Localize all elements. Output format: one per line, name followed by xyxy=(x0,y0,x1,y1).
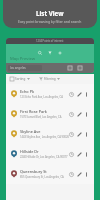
button[interactable]: Filter map xyxy=(48,51,52,55)
staticText: First Rose Park xyxy=(20,109,47,114)
button[interactable]: Edit xyxy=(77,172,82,177)
button[interactable]: Details xyxy=(69,132,74,137)
button[interactable]: Delete xyxy=(85,112,88,117)
button[interactable]: Details xyxy=(69,92,74,97)
button[interactable]: Map control xyxy=(77,65,83,71)
button[interactable]: Details xyxy=(69,172,74,177)
staticText: List View xyxy=(36,9,64,17)
staticText: Skyline Ave xyxy=(20,129,41,134)
button[interactable]: Skyline Ave xyxy=(6,124,94,144)
button[interactable]: Delete xyxy=(85,172,88,177)
staticText: Easy point browsing by filter and search xyxy=(18,19,82,24)
staticText: Echo Pk xyxy=(20,89,35,94)
staticText: Sorting xyxy=(15,77,26,81)
button[interactable]: Edit xyxy=(77,132,82,137)
button[interactable]: Edit xyxy=(77,152,82,157)
staticText: los angeles xyxy=(10,66,26,70)
button[interactable]: Details xyxy=(69,152,74,157)
button[interactable]: Map control xyxy=(67,65,73,71)
button[interactable]: Echo Pk xyxy=(6,84,94,104)
button[interactable]: Details xyxy=(69,112,74,117)
button[interactable]: Delete xyxy=(85,152,88,157)
staticText: Hillside Dr xyxy=(20,149,39,154)
staticText: 123 Echo Park Ave, Los Angeles, CA 90026 xyxy=(20,95,69,99)
staticText: 855 Queensbury St, Los Angeles, CA 90004 xyxy=(20,175,69,179)
button[interactable]: Queensbury St xyxy=(6,164,94,184)
button[interactable]: Filtering xyxy=(39,77,60,81)
staticText: 1570 Sunset Blvd, Los Angeles, CA 90026 xyxy=(20,115,69,119)
staticText: 1234 Points of interest xyxy=(36,39,64,43)
staticText: Queensbury St xyxy=(20,169,47,174)
staticText: 1443 Skyline Ave, Los Angeles, CA 90026 xyxy=(20,135,69,139)
button[interactable]: Delete xyxy=(85,92,88,97)
staticText: 2240 Hillside Dr, Los Angeles, CA 90077 xyxy=(20,155,68,159)
staticText: Map Preview xyxy=(10,56,36,62)
button[interactable]: Edit xyxy=(77,112,82,117)
button[interactable]: Delete xyxy=(85,132,88,137)
button[interactable]: Add point xyxy=(58,51,62,55)
button[interactable]: Search map xyxy=(38,51,42,55)
button[interactable]: Hillside Dr xyxy=(6,144,94,164)
button[interactable]: First Rose Park xyxy=(6,104,94,124)
button[interactable]: Sorting xyxy=(10,77,30,81)
button[interactable]: Edit xyxy=(77,92,82,97)
button[interactable]: los angeles xyxy=(8,65,42,71)
staticText: Filtering xyxy=(44,77,56,81)
